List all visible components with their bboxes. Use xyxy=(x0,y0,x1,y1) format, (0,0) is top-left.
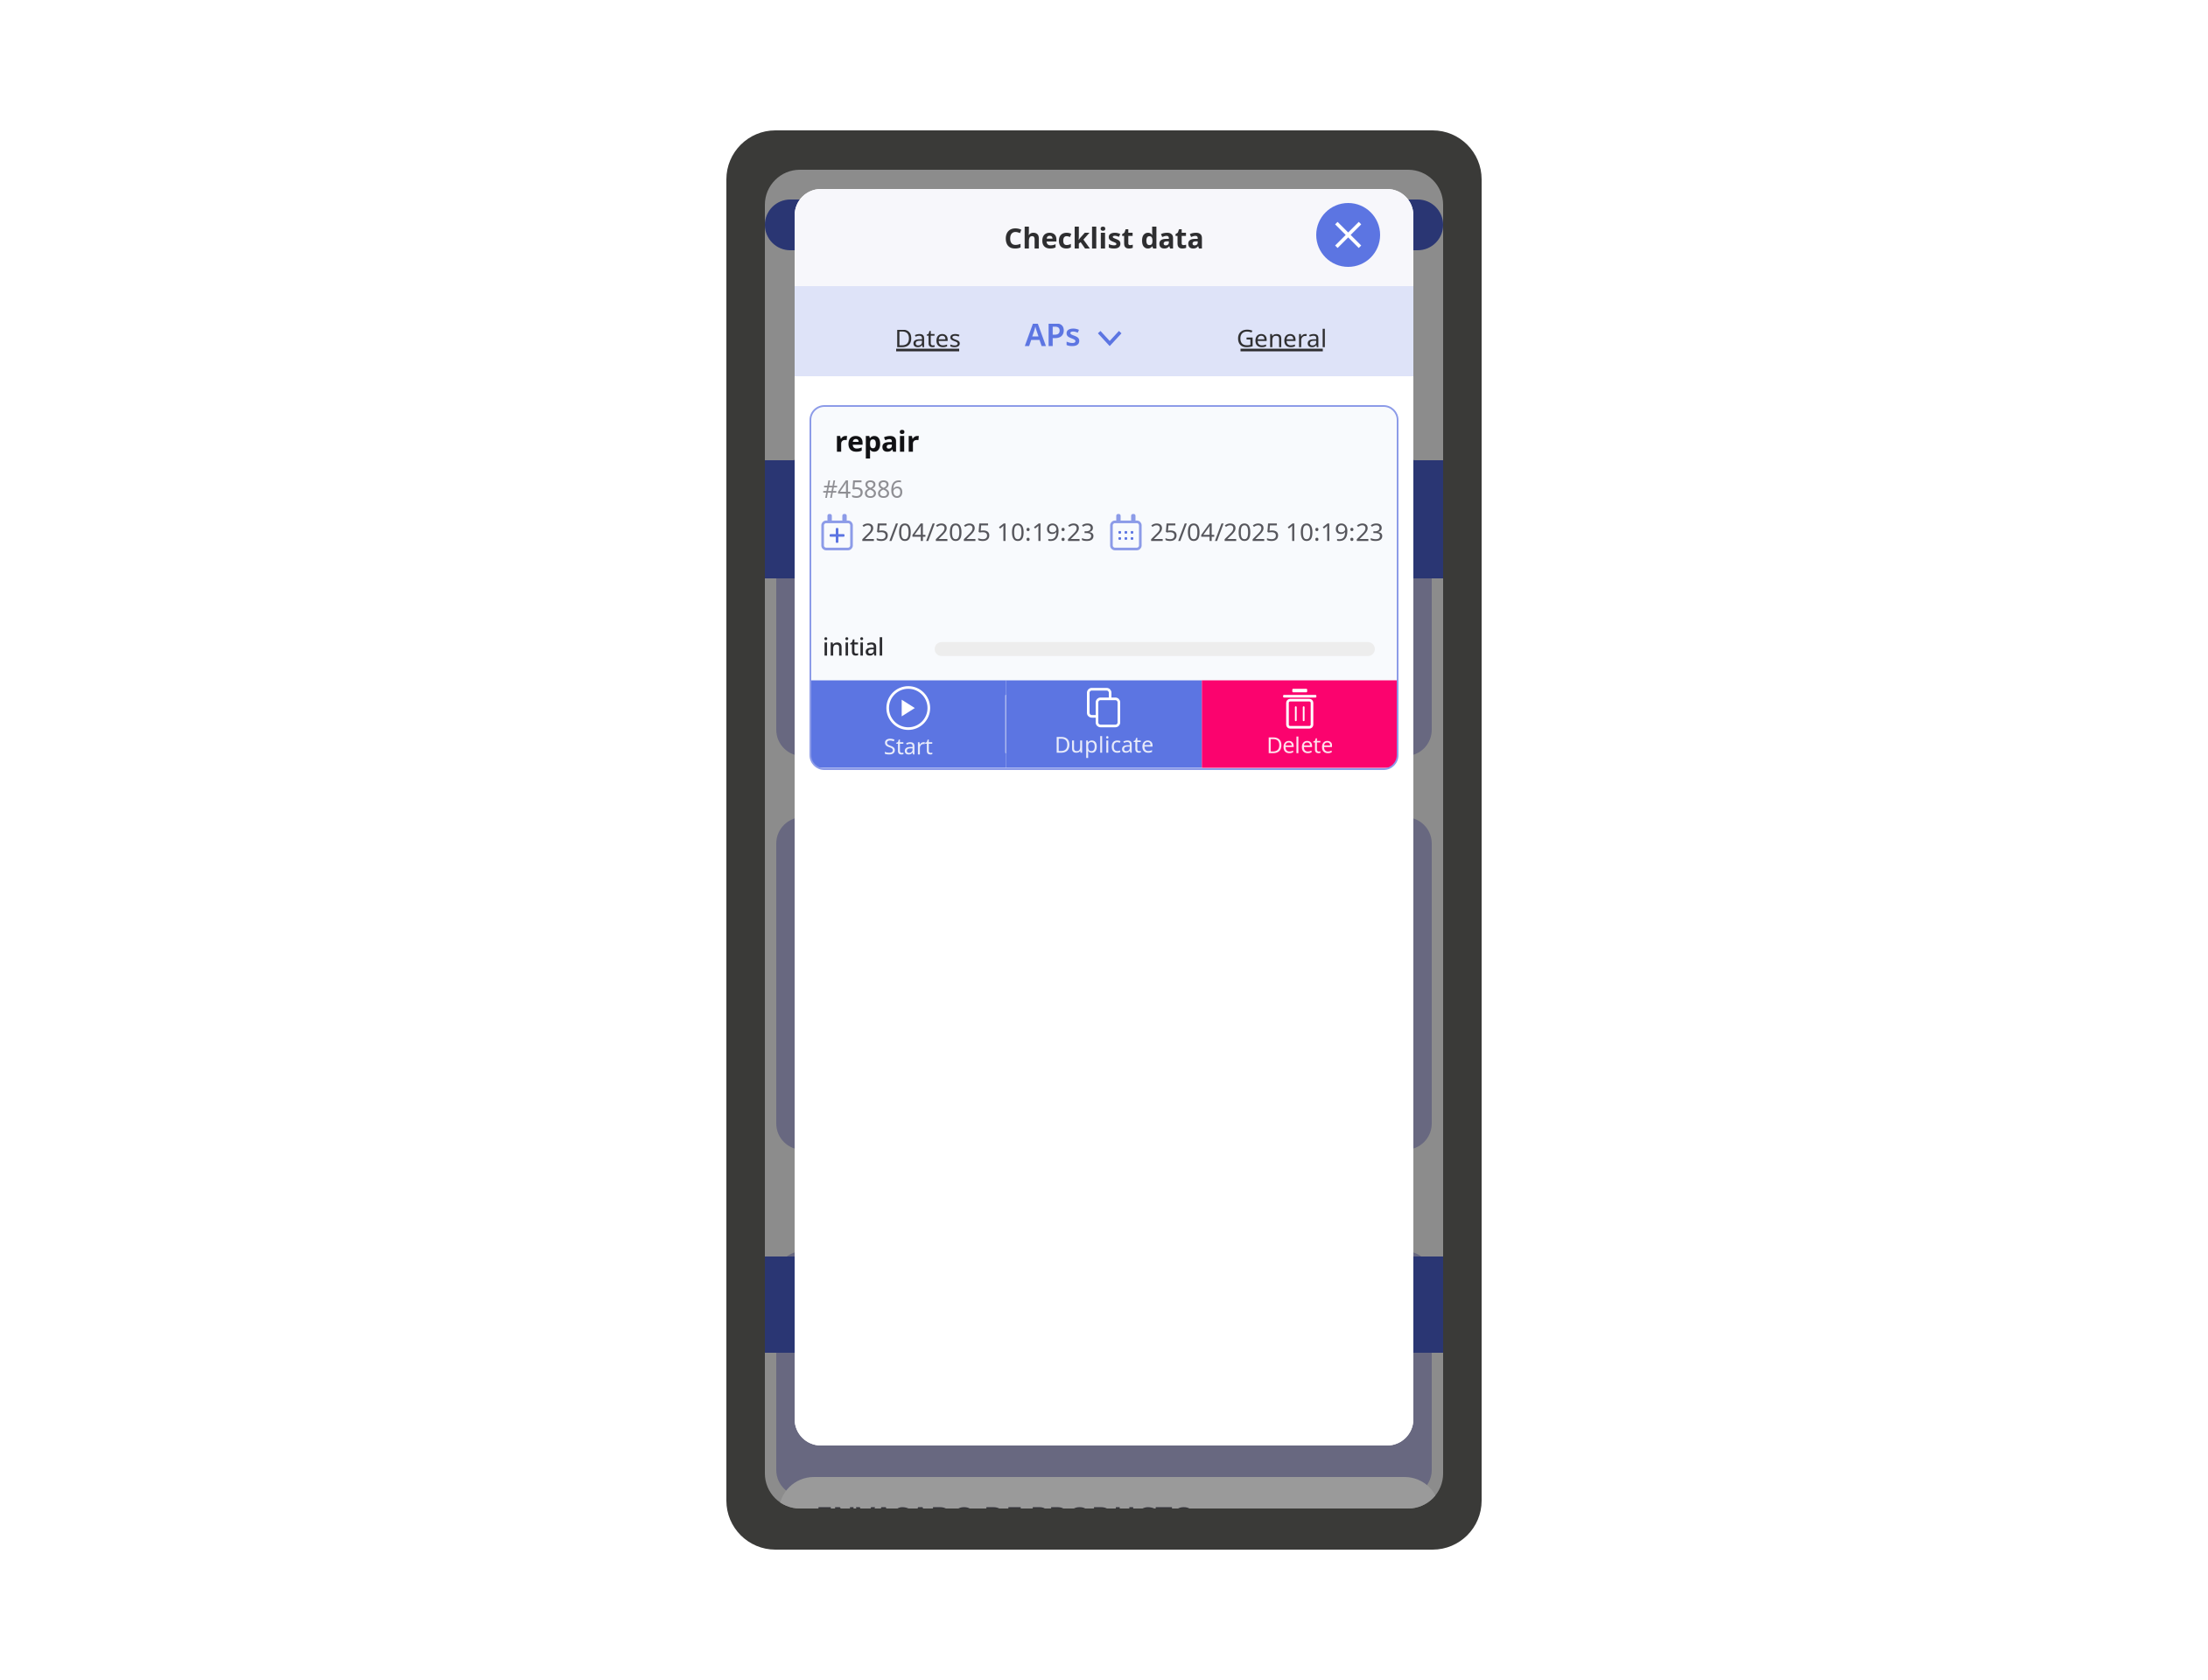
staticText: General xyxy=(1237,321,1327,354)
staticText: Start xyxy=(884,731,933,761)
staticText: #45886 xyxy=(823,473,903,504)
button[interactable]: General xyxy=(1237,321,1327,354)
staticText: Duplicate xyxy=(1055,729,1153,759)
staticText: Dates xyxy=(895,321,960,354)
staticText: ENVASADO DE PRODUCTO xyxy=(816,1497,1195,1537)
staticText: 25/04/2025 10:19:23 xyxy=(861,515,1095,548)
staticText: initial xyxy=(823,631,884,662)
button[interactable]: Dates xyxy=(895,321,960,354)
button[interactable]: Duplicate xyxy=(1006,680,1202,768)
staticText: Checklist data xyxy=(1004,219,1204,256)
staticText: repair xyxy=(835,422,919,459)
button[interactable]: APs xyxy=(1025,313,1120,355)
staticText: APs xyxy=(1025,313,1081,355)
button[interactable]: Start xyxy=(810,680,1006,768)
staticText: Delete xyxy=(1267,730,1333,759)
button[interactable]: Delete xyxy=(1202,680,1398,768)
staticText: 25/04/2025 10:19:23 xyxy=(1150,515,1384,548)
button[interactable]: Close xyxy=(1316,203,1380,267)
